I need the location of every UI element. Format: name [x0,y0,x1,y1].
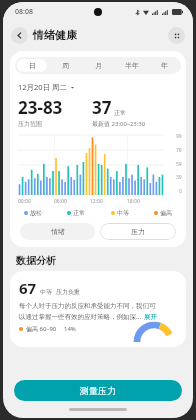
staticText: 情绪 [51,227,65,236]
staticText: 39 [176,174,182,181]
staticText: 12月20日 周二 [18,82,68,92]
button[interactable]: 12月20日 周二 [18,82,75,92]
staticText: 中等 [117,209,129,217]
staticText: 以通过掌握一些有效的应对策略，例如深… [19,312,142,321]
staticText: 0 [179,188,182,195]
button[interactable]: More options [168,27,185,44]
staticText: 周 [62,61,69,70]
staticText: 年 [161,61,168,70]
staticText: 正常 [114,109,126,117]
button[interactable]: 测量压力 [14,380,182,401]
button[interactable]: 情绪 [20,223,95,240]
staticText: 37 [92,96,112,119]
staticText: 23-83 [18,96,63,119]
button[interactable]: Back [11,27,28,44]
staticText: 59 [176,161,182,168]
staticText: 正常 [73,209,85,217]
button[interactable]: 压力 [100,223,176,240]
staticText: 压力范围 [18,120,42,128]
staticText: 14% [64,325,76,333]
staticText: 半年 [125,61,139,70]
staticText: 最新值 23:00–23:30 [92,120,146,128]
button[interactable]: 日 [17,59,47,72]
staticText: 06:00 [54,198,67,205]
staticText: 79 [176,147,182,154]
button[interactable]: 年 [150,59,179,72]
button[interactable]: 周 [51,59,80,72]
button[interactable]: 半年 [117,59,146,72]
staticText: 日 [29,61,36,70]
staticText: 偏高 60–90 [26,325,57,333]
staticText: 99 [176,133,182,140]
staticText: 放松 [30,209,42,217]
staticText: 00:00 [18,198,31,205]
staticText: 12:00 [90,198,103,205]
staticText: 月 [95,61,102,70]
staticText: 每个人对于压力的反应和承受能力不同，我们可 [19,302,156,310]
staticText: 67 [19,278,37,298]
staticText: 压力负重 [56,288,80,296]
staticText: 偏高 [160,209,172,217]
button[interactable]: 展开 [144,313,157,321]
staticText: 压力 [131,227,145,236]
staticText: 中等 [40,288,52,296]
staticText: 数据分析 [16,254,56,267]
staticText: 18:00 [127,198,140,205]
button[interactable]: 月 [84,59,113,72]
staticText: 测量压力 [80,385,116,396]
staticText: 08:08 [15,7,33,17]
staticText: 情绪健康 [33,28,77,42]
